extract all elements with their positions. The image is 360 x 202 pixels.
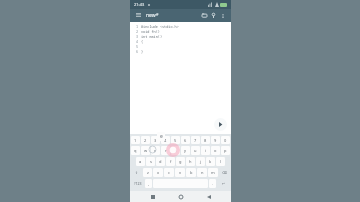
staticText: k — [209, 159, 212, 164]
button[interactable]: b — [186, 168, 196, 177]
button[interactable]: 2 — [141, 136, 150, 144]
button[interactable]: 8 — [201, 136, 210, 144]
staticText: 1 — [134, 138, 137, 143]
button[interactable]: e — [151, 146, 160, 155]
staticText: ⇧ — [135, 171, 138, 175]
staticText: e — [154, 148, 157, 153]
staticText: i — [205, 148, 207, 153]
staticText: l — [220, 159, 222, 164]
staticText: { — [141, 39, 144, 44]
button[interactable]: k — [206, 157, 215, 166]
button[interactable]: g — [176, 157, 185, 166]
button[interactable]: f — [166, 157, 175, 166]
staticText: d — [159, 159, 162, 164]
staticText: z — [147, 170, 149, 175]
button[interactable]: Run program — [214, 118, 227, 131]
button[interactable]: Home — [175, 191, 186, 202]
staticText: ↵ — [222, 182, 225, 186]
button[interactable]: 1 — [131, 136, 140, 144]
button[interactable]: z — [143, 168, 152, 177]
staticText: void fn() — [141, 29, 160, 34]
staticText: a — [139, 159, 142, 164]
button[interactable]: a — [136, 157, 145, 166]
staticText: ?123 — [134, 181, 142, 186]
staticText: 2 — [136, 29, 139, 34]
button[interactable]: l — [216, 157, 225, 166]
button[interactable]: 4 — [161, 136, 170, 144]
button[interactable]: Shift — [131, 168, 142, 177]
staticText: 4 — [136, 39, 139, 44]
staticText: h — [189, 159, 192, 164]
staticText: x — [157, 170, 160, 175]
button[interactable]: s — [146, 157, 155, 166]
button[interactable]: t — [171, 146, 180, 155]
button[interactable]: i — [201, 146, 210, 155]
staticText: 8 — [204, 138, 207, 143]
button[interactable]: j — [196, 157, 205, 166]
button[interactable]: d — [156, 157, 165, 166]
staticText: n — [201, 170, 204, 175]
button[interactable]: 0 — [221, 136, 230, 144]
staticText: 5 — [174, 138, 177, 143]
staticText: j — [200, 159, 202, 164]
button[interactable]: Open file — [200, 11, 209, 20]
staticText: ⌫ — [222, 171, 227, 175]
staticText: 7 — [194, 138, 197, 143]
button[interactable]: y — [181, 146, 190, 155]
staticText: } — [141, 49, 144, 54]
staticText: 3 — [136, 34, 139, 39]
button[interactable]: q — [131, 146, 140, 155]
staticText: t — [175, 148, 177, 153]
button[interactable]: More options — [218, 11, 227, 20]
staticText: s — [150, 159, 152, 164]
button[interactable]: Recent apps — [147, 191, 158, 202]
button[interactable]: Symbols — [131, 179, 144, 188]
staticText: int main() — [141, 34, 162, 39]
button[interactable]: Enter — [217, 179, 230, 188]
staticText: 4 — [164, 138, 167, 143]
button[interactable]: o — [211, 146, 220, 155]
staticText: 0 — [224, 138, 227, 143]
staticText: e — [160, 133, 163, 140]
button[interactable]: 7 — [191, 136, 200, 144]
button[interactable]: m — [208, 168, 218, 177]
staticText: 2 — [144, 138, 147, 143]
button[interactable]: c — [164, 168, 174, 177]
staticText: b — [190, 170, 193, 175]
button[interactable]: Save file — [209, 11, 218, 20]
button[interactable]: Back — [203, 191, 214, 202]
staticText: q — [134, 148, 137, 153]
staticText: c — [168, 170, 170, 175]
button[interactable]: Open navigation menu — [134, 11, 143, 20]
button[interactable]: v — [175, 168, 185, 177]
staticText: 6 — [136, 49, 139, 54]
button[interactable]: 3 — [151, 136, 160, 144]
staticText: g — [179, 159, 182, 164]
staticText: u — [194, 148, 197, 153]
staticText: new* — [146, 12, 159, 19]
staticText: 3 — [154, 138, 157, 143]
button[interactable]: 5 — [171, 136, 180, 144]
button[interactable]: x — [153, 168, 163, 177]
button[interactable]: p — [221, 146, 230, 155]
staticText: 9 — [214, 138, 217, 143]
button[interactable]: w — [141, 146, 150, 155]
staticText: 21:43 — [134, 2, 145, 7]
button[interactable]: 6 — [181, 136, 190, 144]
button[interactable]: u — [191, 146, 200, 155]
button[interactable]: , — [145, 179, 152, 188]
button[interactable]: . — [209, 179, 216, 188]
staticText: o — [214, 148, 217, 153]
staticText: , — [148, 181, 150, 186]
button[interactable]: Backspace — [219, 168, 230, 177]
staticText: f — [170, 159, 172, 164]
staticText: 1 — [136, 24, 139, 29]
button[interactable]: h — [186, 157, 195, 166]
button[interactable]: r — [161, 146, 170, 155]
button[interactable]: n — [197, 168, 207, 177]
staticText: 6 — [184, 138, 187, 143]
staticText: y — [184, 148, 187, 153]
button[interactable]: 9 — [211, 136, 220, 144]
staticText: p — [224, 148, 227, 153]
